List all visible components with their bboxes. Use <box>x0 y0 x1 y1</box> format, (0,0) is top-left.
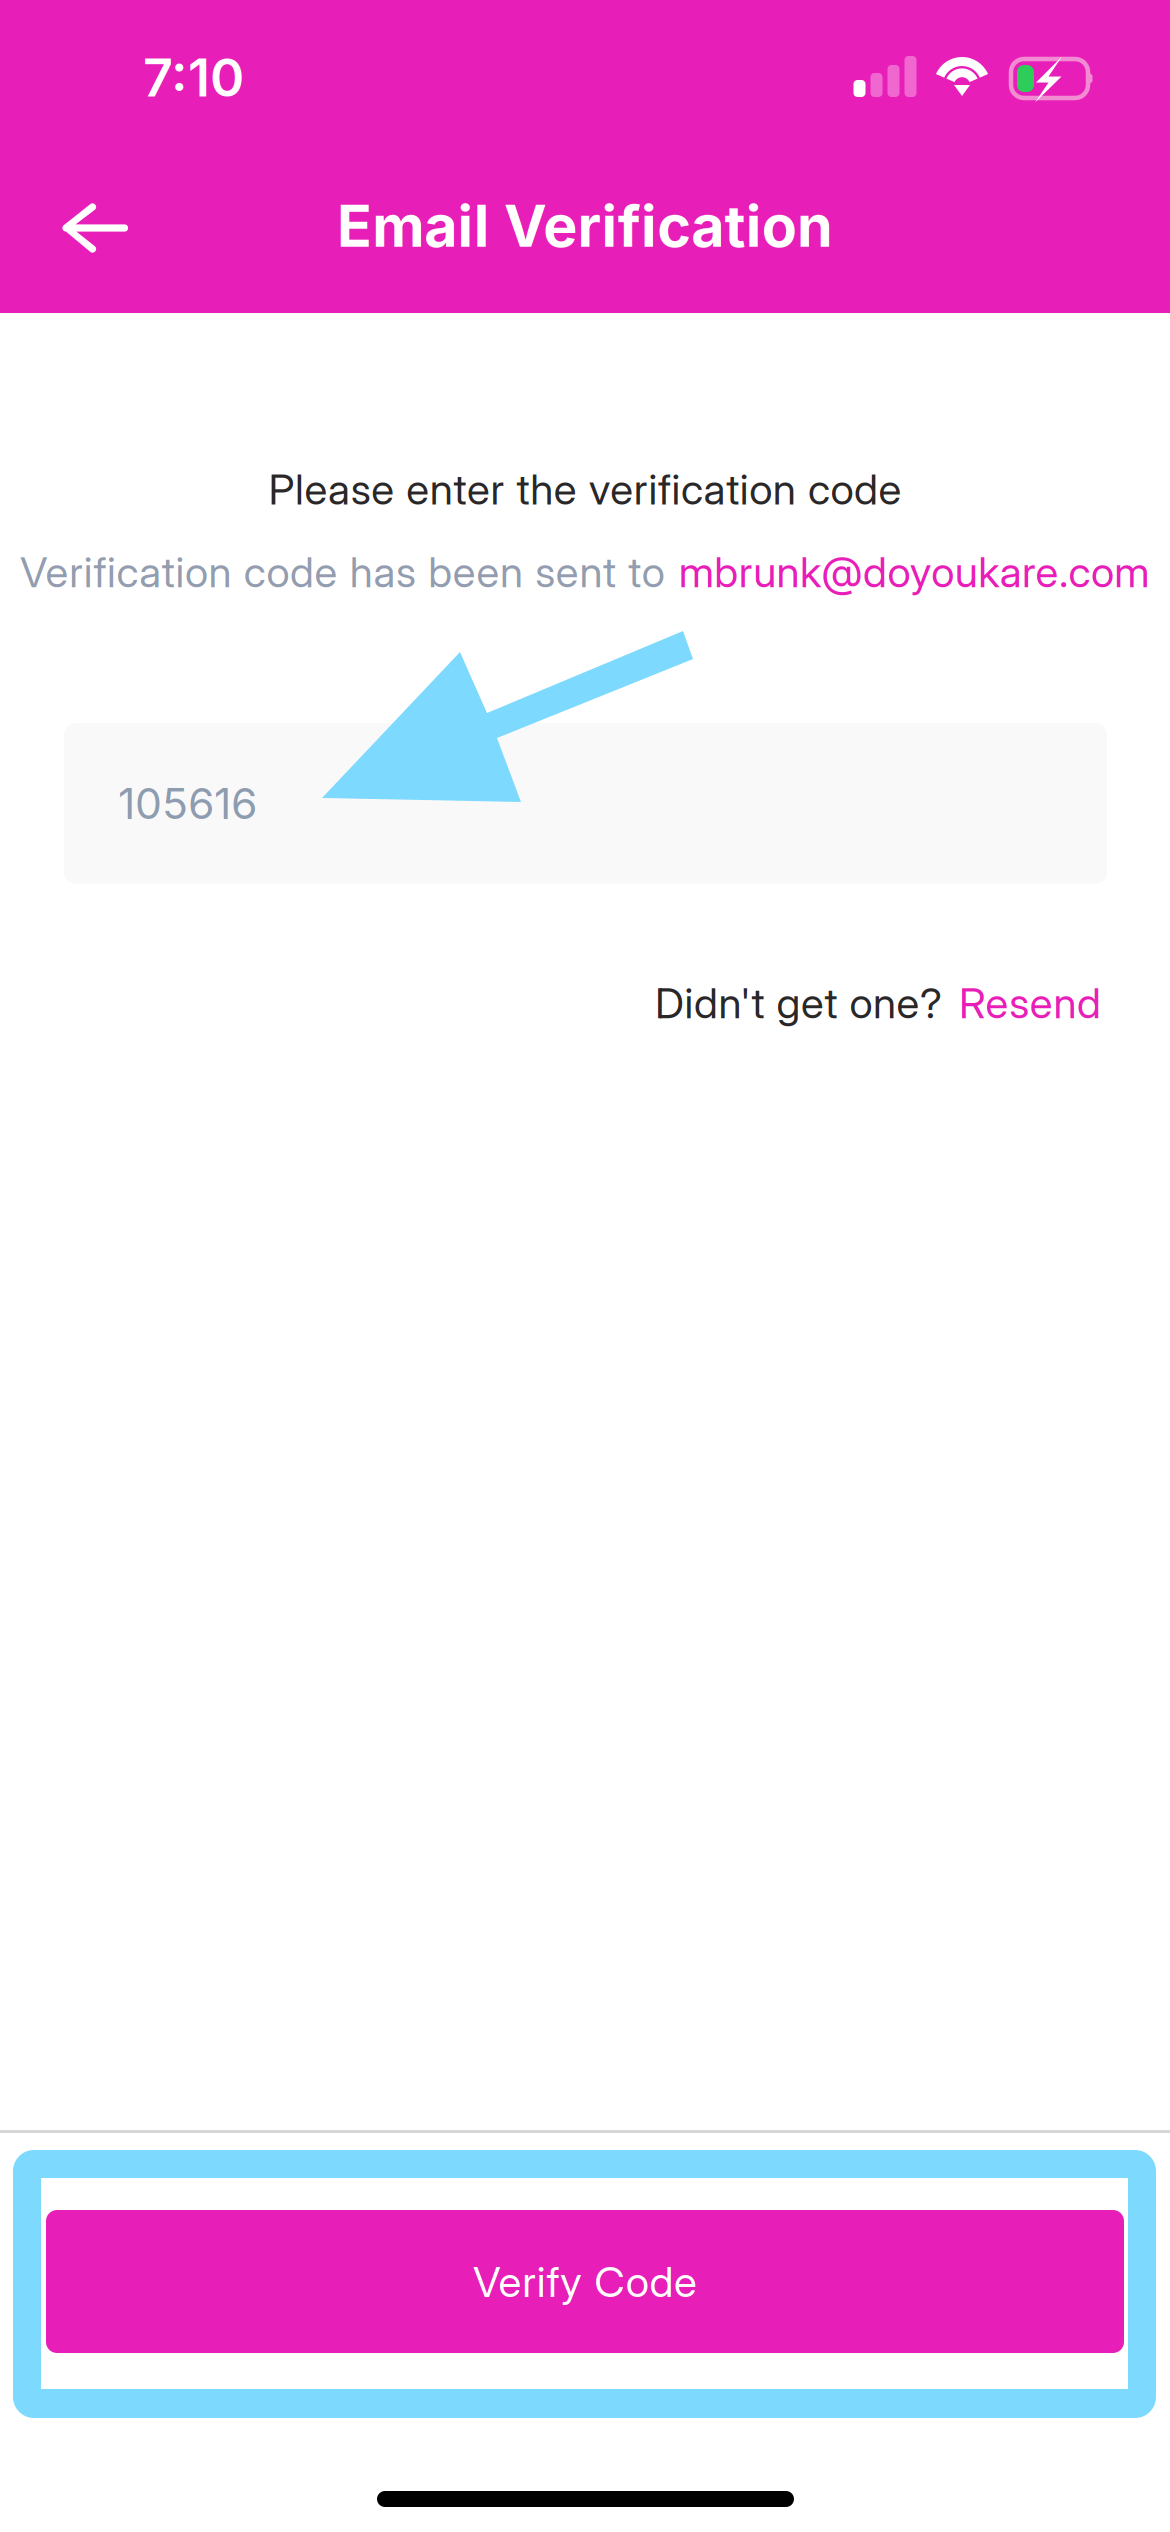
staticText: mbrunk@doyoukare.com <box>679 547 1149 597</box>
button[interactable]: Back <box>30 172 160 282</box>
staticText: Didn't get one? <box>655 978 942 1028</box>
staticText: Verification code has been sent to <box>20 547 665 597</box>
staticText: 7:10 <box>143 46 244 109</box>
button[interactable]: Didn't get one? <box>601 967 1101 1039</box>
staticText: Verify Code <box>473 2256 697 2307</box>
staticText: Resend <box>959 978 1101 1028</box>
button[interactable]: Verify Code <box>46 2210 1124 2353</box>
staticText: 105616 <box>118 778 257 829</box>
staticText: Email Verification <box>337 191 833 261</box>
button[interactable]: 105616 <box>64 723 1107 884</box>
staticText: Please enter the verification code <box>268 463 901 514</box>
